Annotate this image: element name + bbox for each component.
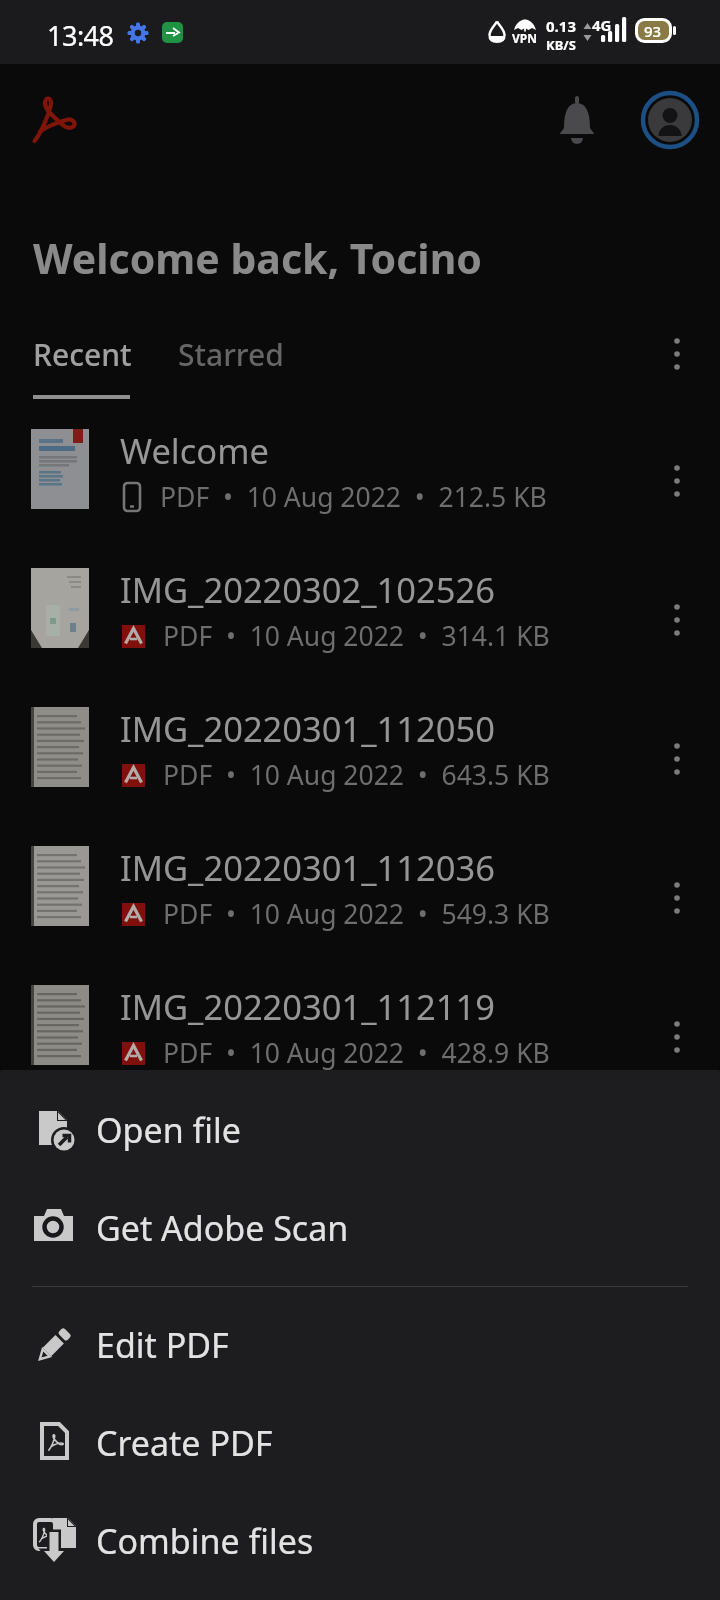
staticText: IMG_20220301_112050	[120, 705, 496, 752]
button[interactable]: IMG_20220301_112119	[0, 967, 720, 1106]
button[interactable]: Starred	[178, 334, 284, 375]
button[interactable]: Combine files	[0, 1492, 720, 1590]
staticText: PDF • 10 Aug 2022 • 549.3 KB	[163, 896, 550, 932]
button[interactable]: IMG_20220301_112050	[0, 689, 720, 828]
staticText: Open file	[96, 1107, 241, 1153]
staticText: PDF • 10 Aug 2022 • 314.1 KB	[163, 618, 550, 654]
button[interactable]	[672, 602, 682, 638]
staticText: Starred	[178, 334, 284, 375]
button[interactable]	[672, 463, 682, 499]
button[interactable]: Open file	[0, 1081, 720, 1179]
button[interactable]: Create PDF	[0, 1394, 720, 1492]
staticText: Combine files	[96, 1518, 314, 1564]
button[interactable]	[672, 741, 682, 777]
button[interactable]: Recent	[33, 334, 132, 375]
button[interactable]	[672, 336, 682, 372]
staticText: PDF • 10 Aug 2022 • 643.5 KB	[163, 757, 550, 793]
button[interactable]	[556, 96, 598, 144]
staticText: IMG_20220301_112119	[120, 983, 496, 1030]
button[interactable]	[30, 93, 82, 145]
staticText: VPN	[512, 30, 538, 46]
button[interactable]	[640, 90, 700, 150]
staticText: 0.13	[546, 16, 576, 36]
staticText: PDF • 10 Aug 2022 • 212.5 KB	[160, 479, 547, 515]
staticText: PDF • 10 Aug 2022 • 428.9 KB	[163, 1035, 550, 1071]
staticText: Welcome	[120, 427, 269, 474]
staticText: Get Adobe Scan	[96, 1205, 349, 1251]
staticText: 93	[644, 21, 662, 41]
staticText: KB/S	[546, 36, 576, 54]
staticText: IMG_20220301_112036	[120, 844, 496, 891]
button[interactable]	[672, 1019, 682, 1055]
button[interactable]: IMG_20220301_112036	[0, 828, 720, 967]
button[interactable]: Get Adobe Scan	[0, 1179, 720, 1277]
staticText: Welcome back, Tocino	[33, 230, 482, 286]
staticText: 4G	[592, 15, 612, 35]
staticText: IMG_20220302_102526	[120, 566, 496, 613]
button[interactable]: Edit PDF	[0, 1296, 720, 1394]
button[interactable]: IMG_20220302_102526	[0, 550, 720, 689]
button[interactable]: Welcome	[0, 411, 720, 550]
staticText: Recent	[33, 334, 132, 375]
staticText: Create PDF	[96, 1420, 273, 1466]
staticText: Edit PDF	[96, 1322, 229, 1368]
button[interactable]	[672, 880, 682, 916]
staticText: 13:48	[47, 17, 114, 54]
